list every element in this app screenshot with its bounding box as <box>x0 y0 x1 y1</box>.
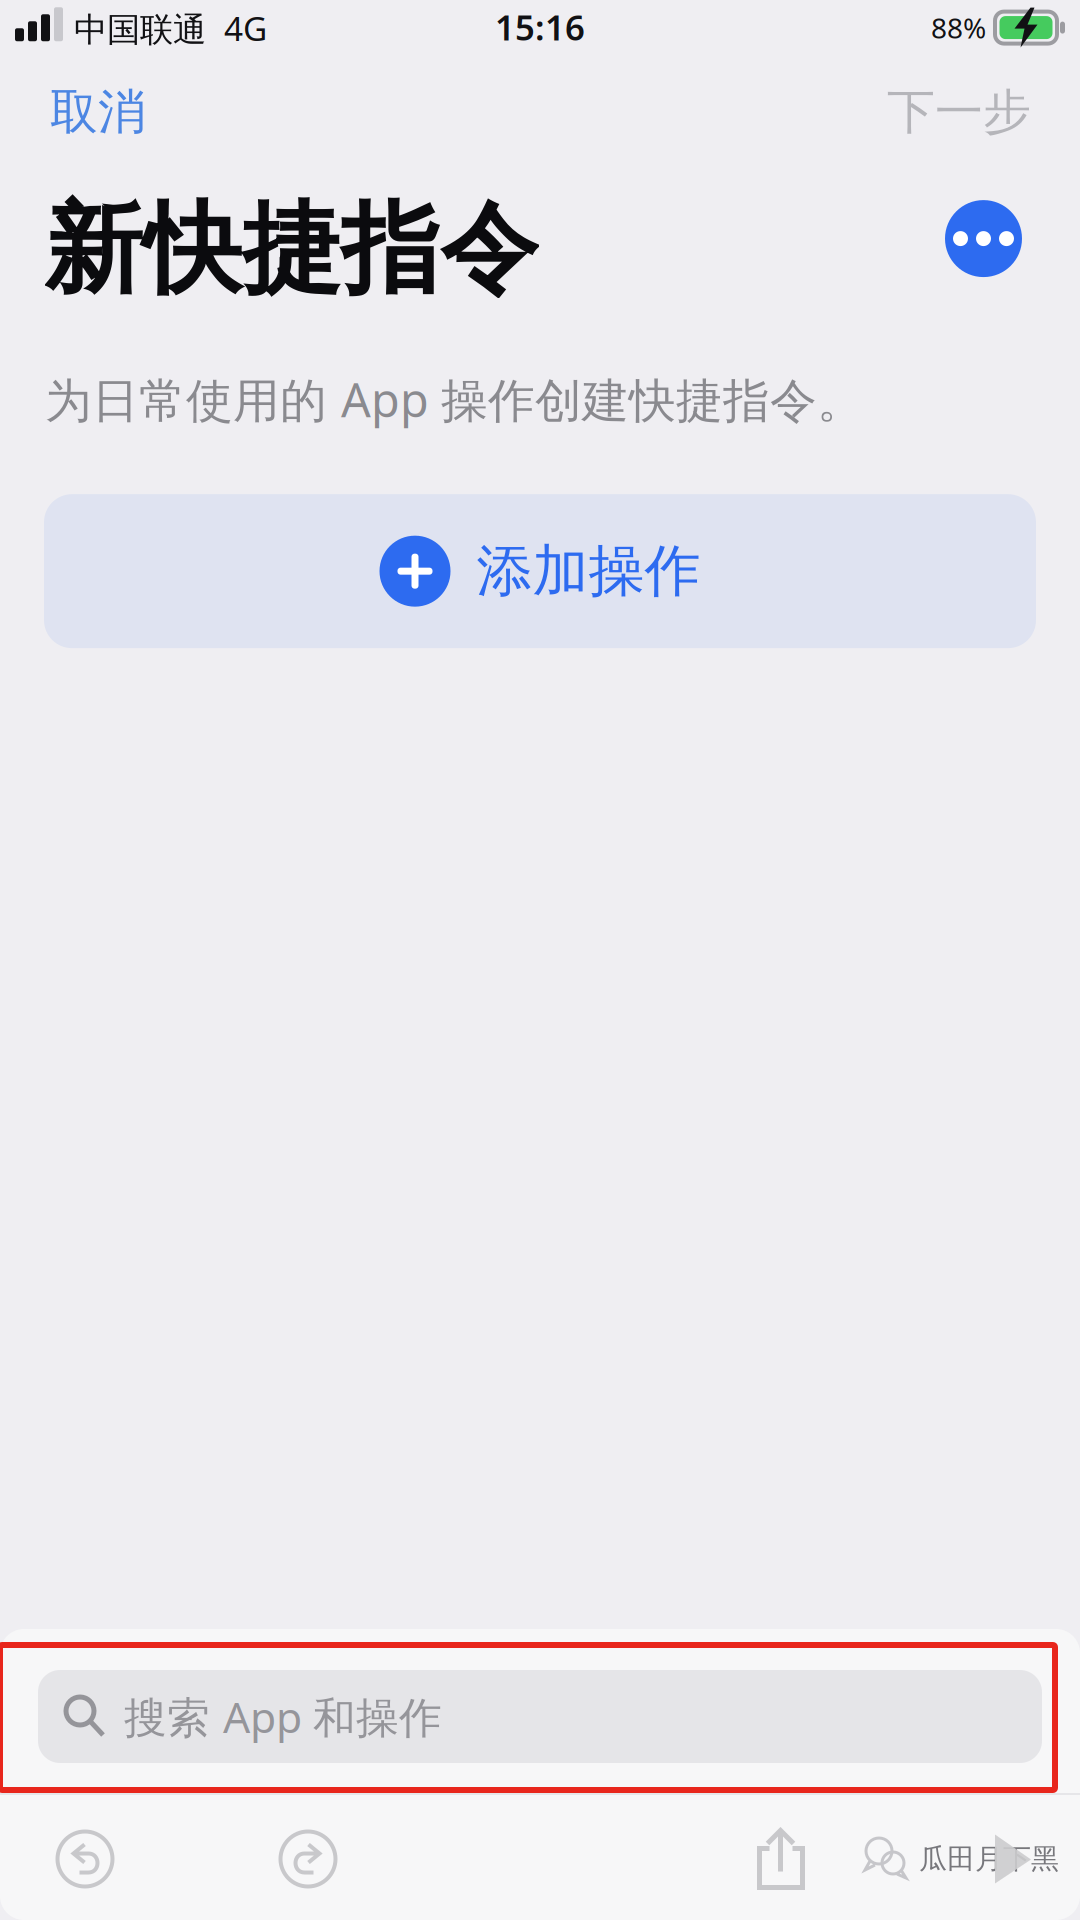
button[interactable]: Undo <box>0 1808 170 1910</box>
button[interactable]: Redo <box>170 1808 446 1910</box>
staticText: 新快捷指令 <box>44 189 539 310</box>
button[interactable]: 添加操作 <box>44 494 1036 648</box>
staticText: 添加操作 <box>476 537 700 606</box>
staticText: 下一步 <box>887 82 1031 141</box>
button[interactable]: 下一步 <box>881 73 1037 150</box>
staticText: 为日常使用的 App 操作创建快捷指令。 <box>45 368 864 430</box>
staticText: 15:16 <box>495 4 585 50</box>
staticText: 4G <box>224 6 267 50</box>
staticText: 瓜田月下黑 <box>919 1842 1059 1876</box>
button[interactable]: More options <box>945 200 1022 277</box>
button[interactable]: 取消 <box>44 73 152 150</box>
button[interactable]: 搜索 App 和操作 <box>38 1670 1042 1763</box>
staticText: 取消 <box>50 82 146 141</box>
button[interactable]: Share <box>698 1808 864 1910</box>
staticText: 中国联通 <box>74 9 206 50</box>
staticText: 搜索 App 和操作 <box>124 1688 442 1745</box>
staticText: 88% <box>931 9 986 46</box>
